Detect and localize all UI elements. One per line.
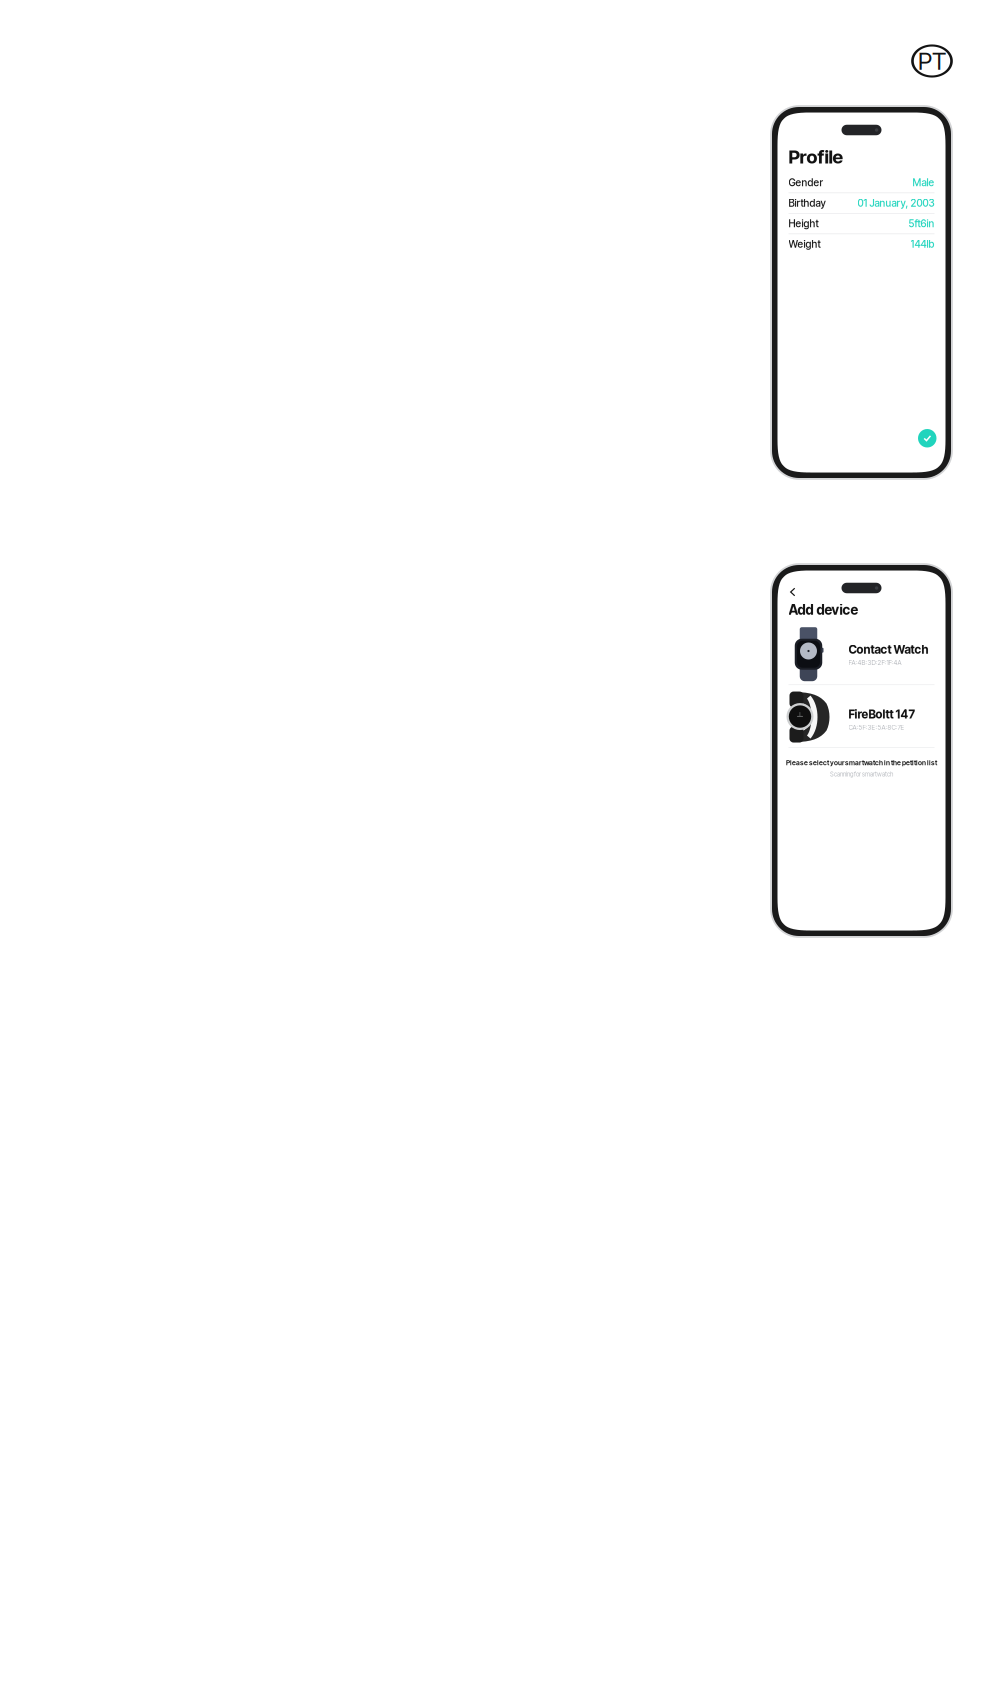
staticText: Birthday [788,197,825,209]
staticText: Male [912,176,934,189]
staticText: 144lb [910,238,934,250]
button[interactable]: Back [785,584,801,600]
button[interactable]: Contact Watch [788,621,934,681]
button[interactable]: FireBoltt 147 [788,686,934,746]
button[interactable]: Birthday [788,193,934,214]
staticText: Please select your smartwatch in the pet… [786,759,937,767]
staticText: Scanning for smartwatch [830,770,893,778]
staticText: PT [918,46,946,75]
staticText: 5ft6in [908,217,934,230]
button[interactable]: Gender [788,173,934,193]
button[interactable]: Profile badge PT [912,45,952,77]
button[interactable]: Confirm [918,429,936,447]
staticText: CA:5F:3E:5A:8C:7E [848,724,904,731]
staticText: FireBoltt 147 [848,707,914,721]
button[interactable]: Weight [788,234,934,255]
staticText: Gender [788,176,822,189]
button[interactable]: Height [788,214,934,234]
staticText: FA:4B:3D:2F:1F:4A [848,659,901,666]
staticText: Contact Watch [848,642,928,656]
staticText: Add device [788,601,858,618]
staticText: Weight [788,238,820,250]
staticText: Height [788,217,818,230]
staticText: Profile [788,145,843,168]
staticText: 01 January, 2003 [857,197,934,209]
